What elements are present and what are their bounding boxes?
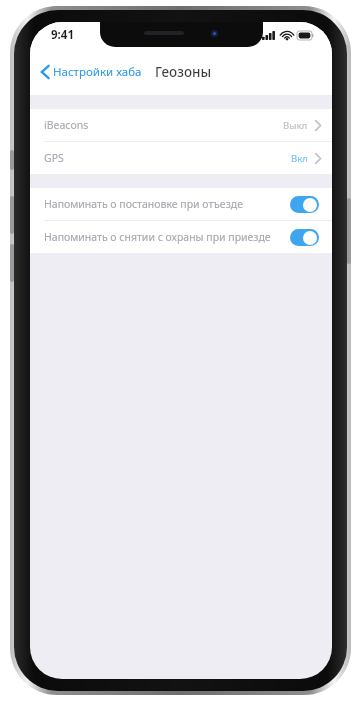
staticText: Настройки хаба xyxy=(53,64,142,80)
staticText: Напоминать о постановке при отъезде xyxy=(44,197,243,211)
staticText: Выкл xyxy=(283,119,308,132)
button[interactable]: iBeacons xyxy=(30,109,332,141)
staticText: Геозоны xyxy=(155,63,212,81)
button[interactable]: Напоминать о снятии с охраны при приезде xyxy=(30,221,332,253)
staticText: iBeacons xyxy=(44,118,89,132)
staticText: Напоминать о снятии с охраны при приезде xyxy=(44,230,271,244)
other: Back xyxy=(41,65,49,79)
staticText: Вкл xyxy=(291,152,308,165)
other: Toggle on xyxy=(290,196,319,213)
button[interactable]: Напоминать о постановке при отъезде xyxy=(30,188,332,220)
staticText: 9:41 xyxy=(51,27,74,43)
staticText: GPS xyxy=(44,151,64,165)
other: Toggle on xyxy=(290,229,319,246)
button[interactable]: Back xyxy=(30,60,146,84)
button[interactable]: GPS xyxy=(30,142,332,174)
